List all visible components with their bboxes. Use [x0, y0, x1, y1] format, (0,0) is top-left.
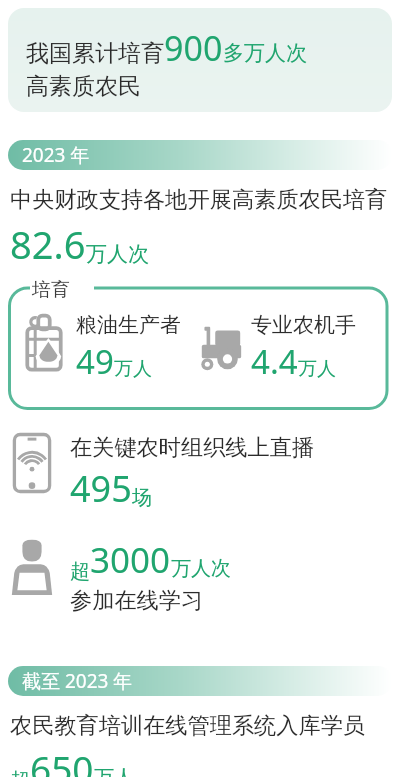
staticText: 在关键农时组织线上直播	[70, 434, 315, 462]
staticText: 参加在线学习	[70, 587, 204, 615]
button[interactable]: 我国累计培育	[8, 8, 392, 112]
staticText: 49	[76, 339, 114, 384]
staticText: 农民教育培训在线管理系统入库学员	[10, 712, 365, 740]
staticText: 3000	[90, 536, 171, 584]
staticText: 万人次	[86, 241, 149, 267]
staticText: 82.6	[10, 218, 86, 270]
staticText: 我国累计培育	[26, 39, 164, 68]
button[interactable]: 在线学习	[8, 536, 388, 615]
staticText: 培育	[32, 278, 70, 302]
button[interactable]: 2023 年	[8, 140, 392, 170]
staticText: 万人	[94, 765, 134, 777]
button[interactable]: 培育	[8, 282, 390, 410]
staticText: 万人	[114, 357, 152, 381]
staticText: 场	[132, 485, 152, 510]
staticText: 多万人次	[223, 40, 307, 66]
staticText: 超	[70, 559, 90, 584]
button[interactable]: 在线直播	[10, 432, 390, 511]
staticText: 万人	[298, 357, 336, 381]
staticText: 650	[30, 743, 94, 777]
other: 粮油生产者	[22, 312, 66, 374]
staticText: 万人次	[171, 556, 231, 581]
staticText: 4.4	[251, 339, 298, 384]
staticText: 粮油生产者	[76, 312, 181, 338]
staticText: 中央财政支持各地开展高素质农民培育	[10, 186, 388, 214]
staticText: 专业农机手	[251, 312, 356, 338]
staticText: 2023 年	[22, 142, 90, 168]
staticText: 截至 2023 年	[22, 668, 133, 694]
other: 在线直播	[10, 432, 54, 494]
other: 在线学习	[8, 536, 56, 600]
staticText: 超	[10, 768, 30, 777]
staticText: 900	[164, 25, 223, 71]
staticText: 高素质农民	[26, 72, 141, 101]
staticText: 495	[70, 464, 132, 513]
button[interactable]: 截至 2023 年	[8, 666, 392, 696]
other: 专业农机手	[197, 318, 245, 380]
